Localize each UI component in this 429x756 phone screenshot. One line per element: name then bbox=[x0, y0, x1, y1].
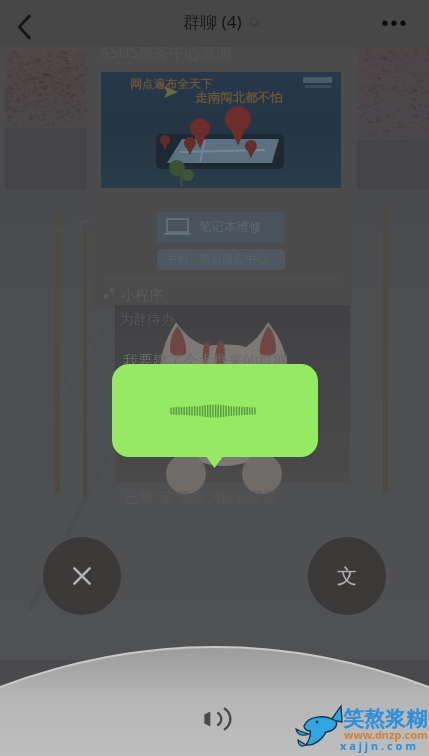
staticText: 网点遍布全天下 bbox=[130, 77, 213, 92]
staticText: ASUS服务中心查询 bbox=[100, 41, 232, 62]
staticText: 笑熬浆糊网 bbox=[343, 706, 429, 732]
staticText: 群聊 (4) bbox=[183, 10, 242, 33]
button[interactable]: Recording in progress bbox=[194, 698, 236, 740]
staticText: www.dnzp.com bbox=[344, 727, 428, 742]
staticText: x a j j n . c o m bbox=[340, 738, 416, 753]
staticText: 已将"宝"添加为群管理员 bbox=[125, 487, 277, 506]
staticText: 手机 bbox=[166, 252, 189, 266]
button[interactable]: Back bbox=[4, 0, 46, 47]
staticText: 小程序 bbox=[121, 287, 163, 305]
staticText: 售后服务中心 bbox=[199, 252, 268, 266]
staticText: 文 bbox=[337, 564, 357, 589]
button[interactable]: More options bbox=[378, 0, 424, 47]
button[interactable]: Cancel recording bbox=[43, 537, 121, 615]
staticText: 走南闯北都不怕 bbox=[195, 90, 283, 106]
staticText: 笔记本维修 bbox=[199, 219, 262, 235]
button[interactable]: Convert to text bbox=[308, 537, 386, 615]
staticText: 为群待办 bbox=[119, 311, 175, 329]
staticText: 我要建了个大群来的群聊 bbox=[123, 352, 288, 371]
